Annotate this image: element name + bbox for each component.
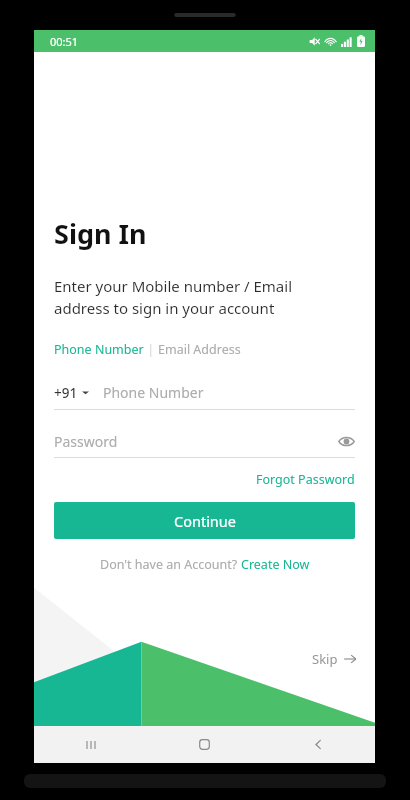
button[interactable]: Email Address xyxy=(158,341,241,358)
staticText: Create Now xyxy=(241,556,310,573)
staticText: 00:51 xyxy=(50,34,79,49)
button[interactable]: Phone Number xyxy=(54,341,144,358)
button[interactable]: +91 xyxy=(54,383,355,402)
staticText: Password xyxy=(54,432,338,451)
staticText: Don't have an Account? xyxy=(100,556,241,573)
button[interactable]: Continue xyxy=(54,502,355,539)
button[interactable]: Show password xyxy=(338,433,355,450)
staticText: Skip xyxy=(312,650,338,668)
button[interactable]: Home xyxy=(147,726,261,763)
button[interactable]: Create Now xyxy=(241,556,310,573)
staticText: Email Address xyxy=(158,341,241,358)
staticText: +91 xyxy=(54,384,78,402)
staticText: Forgot Password xyxy=(256,471,355,488)
button[interactable]: Recents xyxy=(34,726,147,763)
staticText: | xyxy=(144,341,158,358)
button[interactable]: Skip xyxy=(312,650,357,668)
button[interactable]: Password xyxy=(54,432,355,451)
staticText: Phone Number xyxy=(54,341,144,358)
staticText: Phone Number xyxy=(103,383,204,402)
button[interactable]: Forgot Password xyxy=(256,471,355,488)
staticText: Enter your Mobile number / Email address… xyxy=(54,276,293,319)
button[interactable]: Back xyxy=(261,726,375,763)
staticText: Continue xyxy=(174,511,236,531)
staticText: Sign In xyxy=(54,215,147,252)
